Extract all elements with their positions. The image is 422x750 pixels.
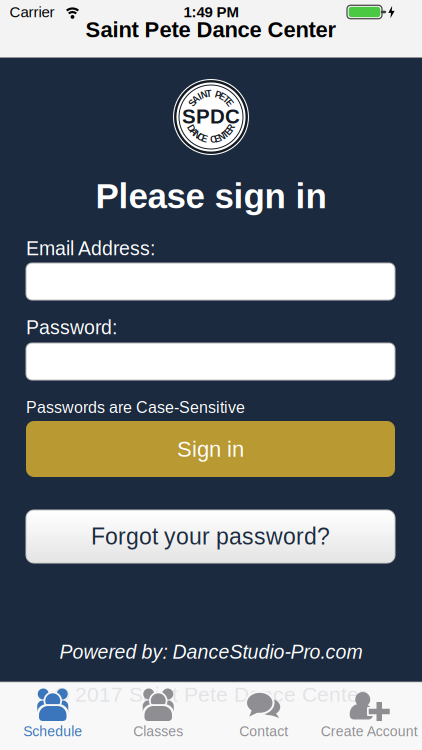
staticText <box>208 135 210 145</box>
button[interactable]: Schedule <box>0 682 105 750</box>
staticText: D <box>188 123 194 133</box>
staticText: E <box>201 134 207 144</box>
staticText: Contact <box>239 724 288 739</box>
staticText: N <box>201 90 207 100</box>
staticText: T <box>223 130 228 140</box>
staticText: I <box>199 92 201 102</box>
staticText: E <box>226 127 232 137</box>
staticText: Email Address: <box>26 238 155 259</box>
button[interactable]: Create Account <box>316 682 422 750</box>
staticText: Saint Pete Dance Center <box>85 17 336 42</box>
staticText: E <box>226 98 232 108</box>
staticText: Please sign in <box>95 176 326 215</box>
staticText: P <box>215 90 221 100</box>
staticText: 1:49 PM <box>183 4 238 20</box>
staticText: © 2017 Saint Pete Dance Center <box>54 683 366 706</box>
staticText: C <box>197 133 203 142</box>
staticText: E <box>215 134 221 144</box>
staticText: N <box>194 130 200 140</box>
staticText: S <box>190 98 196 108</box>
staticText: Sign in <box>177 437 244 461</box>
staticText: Create Account <box>321 724 418 739</box>
staticText: T <box>206 89 211 99</box>
staticText: Classes <box>133 724 183 739</box>
staticText: SPDC <box>182 105 240 128</box>
staticText: T <box>224 95 229 104</box>
button[interactable]: Email Address <box>26 263 395 300</box>
button[interactable]: Sign in <box>26 421 395 477</box>
staticText: C <box>210 135 216 145</box>
button[interactable]: Classes <box>105 682 211 750</box>
staticText: A <box>190 127 196 137</box>
staticText: N <box>219 133 225 142</box>
staticText: Carrier <box>9 4 54 20</box>
staticText: Schedule <box>23 724 82 739</box>
staticText: Powered by: DanceStudio-Pro.com <box>59 641 362 663</box>
staticText: Passwords are Case-Sensitive <box>26 399 245 416</box>
button[interactable]: Password <box>26 343 395 380</box>
staticText: A <box>193 95 199 104</box>
staticText: R <box>228 123 234 133</box>
staticText: Password: <box>26 317 117 338</box>
staticText: Forgot your password? <box>91 524 330 549</box>
button[interactable]: Contact <box>211 682 316 750</box>
staticText: E <box>219 92 225 102</box>
button[interactable]: Forgot your password? <box>26 510 395 563</box>
